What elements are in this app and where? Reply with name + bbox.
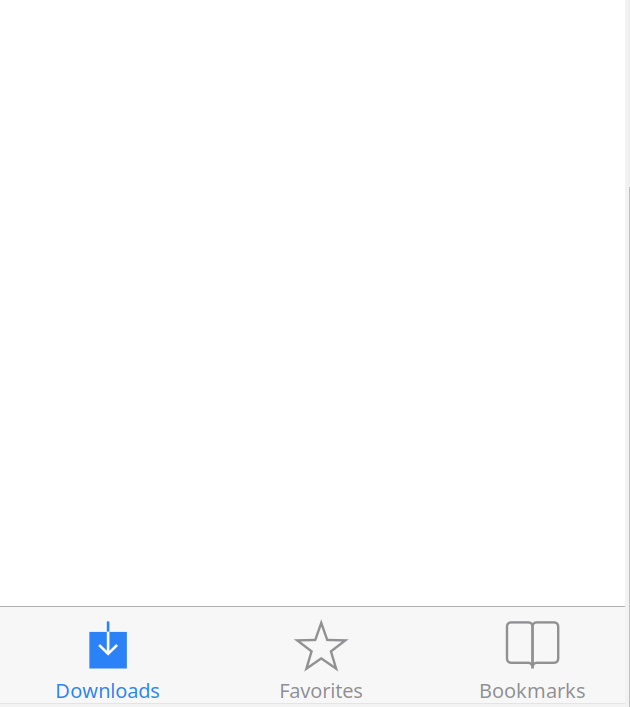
button[interactable]: Downloads — [0, 605, 215, 705]
button[interactable]: Favorites — [215, 605, 427, 705]
staticText: Bookmarks — [479, 677, 586, 703]
button[interactable]: Bookmarks — [427, 605, 630, 705]
staticText: Downloads — [55, 677, 160, 703]
staticText: Favorites — [279, 677, 363, 703]
